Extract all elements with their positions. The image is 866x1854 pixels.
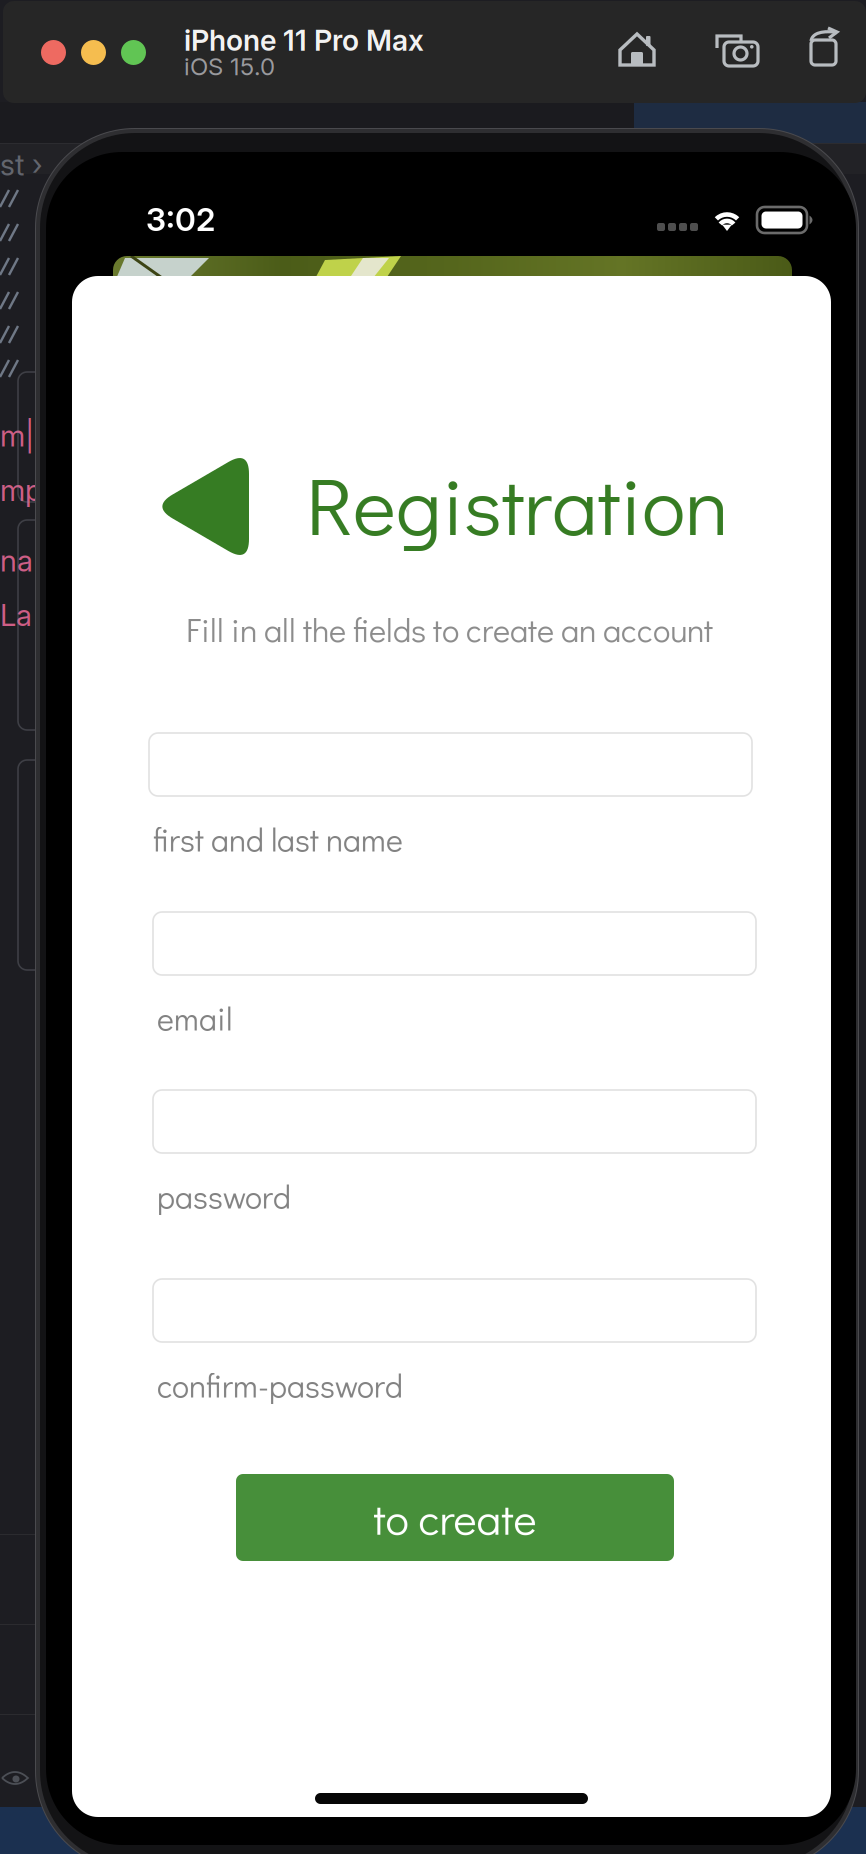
staticText: first and last name [153,818,403,860]
staticText: Fill in all the fields to create an acco… [186,608,713,651]
staticText: iPhone 11 Pro Max [184,23,424,58]
button[interactable]: Screenshot [714,31,762,71]
button[interactable]: Back [152,450,249,563]
staticText: password [157,1175,291,1217]
staticText: email [157,997,232,1039]
button[interactable]: to create [236,1474,674,1561]
staticText: m| [0,418,34,453]
staticText: st › [0,147,42,182]
button[interactable]: Home [618,30,658,70]
staticText: La [0,597,32,633]
staticText: iOS 15.0 [184,52,275,81]
button[interactable]: Rotate [807,27,845,67]
staticText: 3:02 [146,200,215,239]
staticText: na [0,543,33,578]
staticText: mp [0,472,42,508]
staticText: Registration [306,450,729,557]
staticText: confirm-password [157,1364,403,1406]
staticText: to create [373,1489,536,1546]
